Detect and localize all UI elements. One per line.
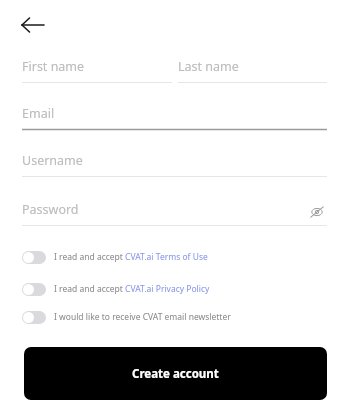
staticText: Create account <box>132 366 219 382</box>
staticText: Email <box>22 105 55 122</box>
button[interactable]: Email <box>22 105 327 131</box>
button[interactable]: Back <box>12 12 54 38</box>
button[interactable]: I read and accept CVAT.ai Terms of Use <box>22 246 208 268</box>
staticText: I read and accept CVAT.ai Terms of Use <box>54 251 208 263</box>
button[interactable]: Password <box>22 201 327 227</box>
staticText: I read and accept CVAT.ai Privacy Policy <box>54 283 210 295</box>
button[interactable]: Username <box>22 152 327 178</box>
button[interactable]: I would like to receive CVAT email newsl… <box>22 306 231 328</box>
button[interactable]: First name <box>22 58 172 84</box>
staticText: Last name <box>178 58 239 75</box>
button[interactable]: I read and accept CVAT.ai Privacy Policy <box>22 278 210 300</box>
staticText: Password <box>22 201 79 218</box>
button[interactable]: Show password <box>307 202 327 222</box>
button[interactable]: Create account <box>24 347 327 400</box>
button[interactable]: Last name <box>178 58 327 84</box>
staticText: I would like to receive CVAT email newsl… <box>54 311 231 323</box>
staticText: Username <box>22 152 83 169</box>
staticText: First name <box>22 58 85 75</box>
